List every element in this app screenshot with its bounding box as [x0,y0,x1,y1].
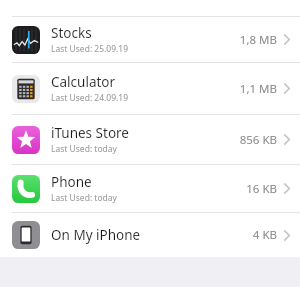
staticText: On My iPhone [51,226,141,244]
staticText: Phone [51,173,92,191]
other: Open details [284,83,290,94]
staticText: Calculator [51,73,116,91]
other: Open details [284,134,290,145]
button[interactable]: Stocks [0,17,300,62]
other: Open details [284,34,290,45]
other: Open details [284,183,290,194]
staticText: 1,1 MB [239,81,277,97]
staticText: 856 KB [239,132,277,148]
staticText: Stocks [51,24,92,42]
staticText: Last Used: today [51,192,117,204]
button[interactable]: iTunes Store [0,115,300,164]
button[interactable]: Calculator [0,63,300,114]
staticText: Last Used: 25.09.19 [51,43,129,55]
staticText: 16 KB [246,181,277,197]
staticText: Last Used: today [51,143,117,155]
staticText: 4 KB [252,227,277,243]
staticText: iTunes Store [51,124,129,142]
button[interactable]: On My iPhone [0,213,300,257]
staticText: Last Used: 24.09.19 [51,92,129,104]
button[interactable]: Phone [0,165,300,212]
staticText: 1,8 MB [239,32,277,48]
other: Open details [284,230,290,241]
